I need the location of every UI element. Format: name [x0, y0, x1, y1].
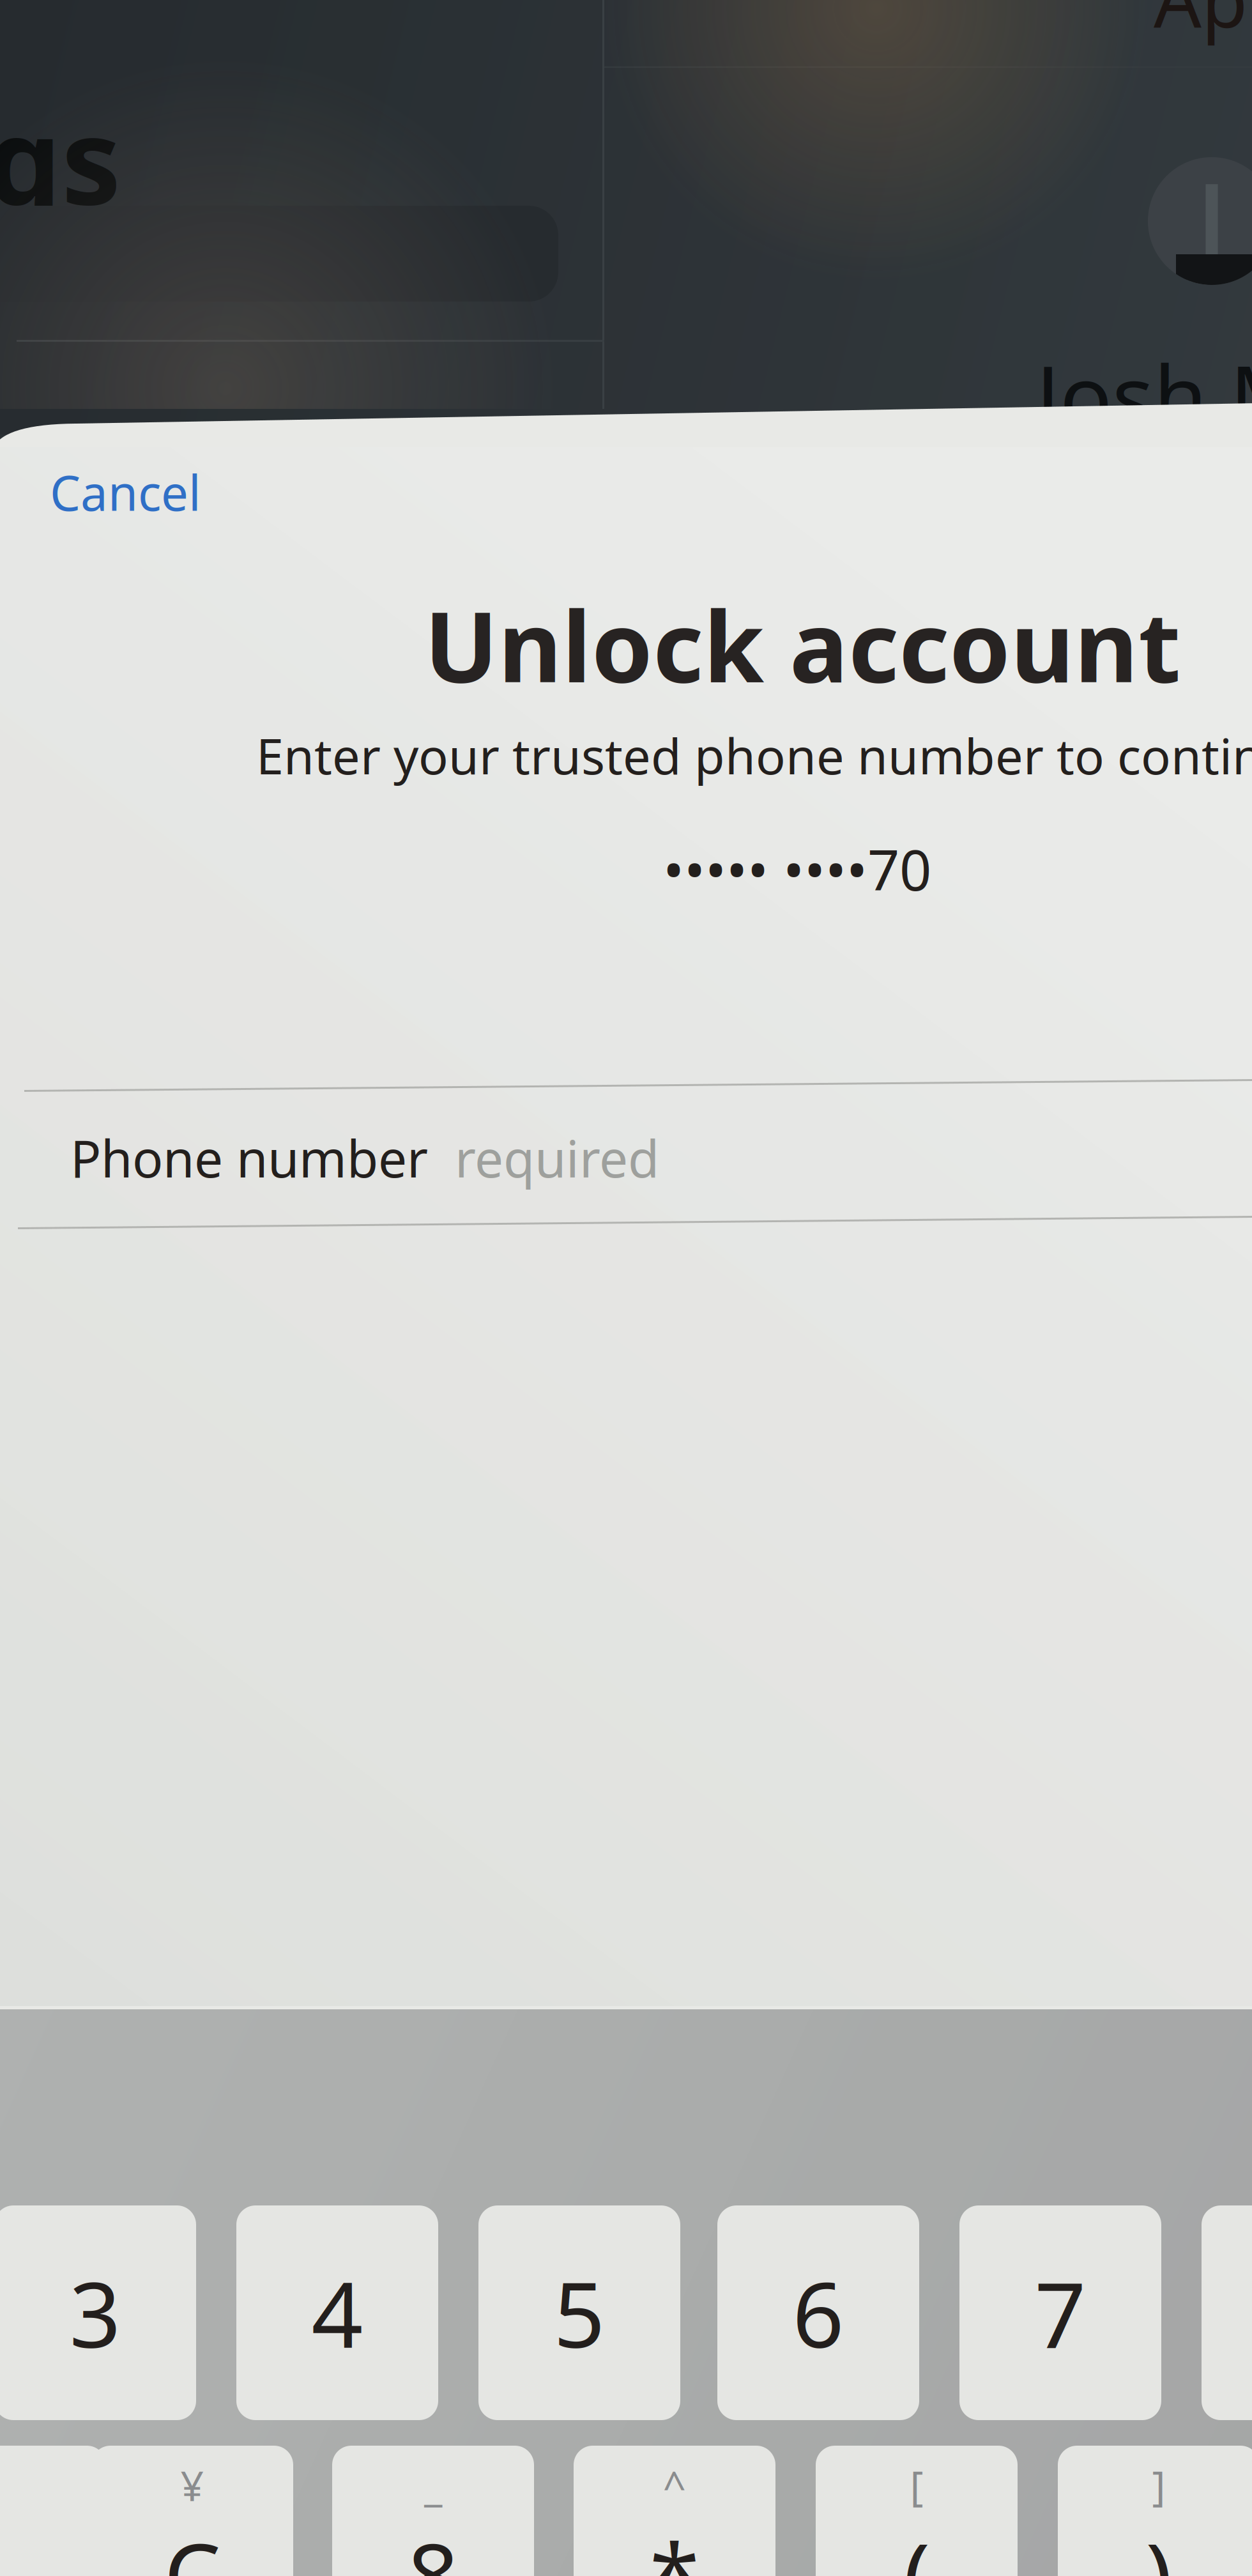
staticText: [ — [910, 2458, 923, 2512]
button[interactable]: Phone number — [70, 1090, 1252, 1225]
staticText: J — [1195, 146, 1228, 296]
staticText: 7 — [1034, 2253, 1086, 2373]
staticText: Unlock account — [424, 579, 1181, 709]
staticText: ( — [903, 2514, 930, 2576]
button[interactable]: 4 — [236, 2205, 438, 2420]
staticText: Phone number — [70, 1124, 428, 1192]
staticText: 5 — [553, 2253, 605, 2373]
button[interactable]: _ — [332, 2446, 534, 2576]
staticText: Cancel — [50, 460, 201, 524]
button[interactable]: 6 — [717, 2205, 919, 2420]
staticText: * — [650, 2514, 699, 2576]
button[interactable]: 7 — [959, 2205, 1161, 2420]
staticText: 3 — [69, 2253, 121, 2373]
button[interactable]: 5 — [478, 2205, 680, 2420]
staticText: 4 — [311, 2253, 363, 2373]
staticText: 6 — [792, 2253, 844, 2373]
staticText: ¥ — [180, 2458, 204, 2512]
button[interactable]: ¥ — [91, 2446, 293, 2576]
staticText: ] — [1152, 2458, 1165, 2512]
button[interactable]: ] — [1058, 2446, 1252, 2576]
button[interactable]: 8 — [1202, 2205, 1252, 2420]
staticText: ^ — [663, 2458, 686, 2512]
staticText: ) — [1145, 2514, 1172, 2576]
button[interactable]: [ — [816, 2446, 1018, 2576]
staticText: required — [428, 1124, 659, 1192]
staticText: ••••• ••••70 — [663, 831, 931, 906]
staticText: Enter your trusted phone number to conti… — [256, 722, 1252, 788]
staticText: _ — [424, 2458, 442, 2512]
button[interactable]: Cancel — [50, 457, 241, 527]
staticText: gs — [0, 79, 121, 237]
staticText: C — [164, 2514, 221, 2576]
staticText: App — [1154, 0, 1252, 48]
staticText: 8 — [407, 2514, 459, 2576]
button[interactable]: 3 — [0, 2205, 196, 2420]
button[interactable]: ^ — [574, 2446, 775, 2576]
staticText: Josh M — [1036, 337, 1252, 452]
